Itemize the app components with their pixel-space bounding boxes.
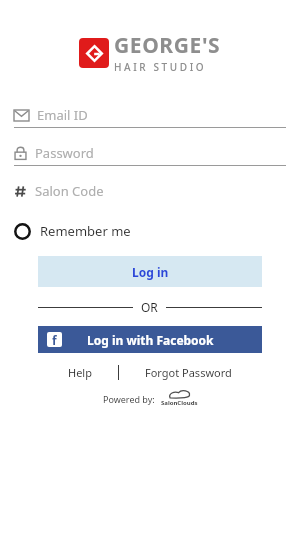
other: Email xyxy=(14,110,29,121)
staticText: Password xyxy=(35,144,94,162)
other: Salon code xyxy=(14,185,27,198)
staticText: Log in xyxy=(132,264,169,280)
button[interactable]: Log in xyxy=(38,256,262,287)
button[interactable]: Remember me xyxy=(12,219,133,243)
staticText: SalonClouds xyxy=(161,399,198,407)
staticText: GEORGE'S xyxy=(114,31,221,60)
button[interactable]: Password xyxy=(14,141,286,165)
other: Facebook xyxy=(47,332,62,347)
staticText: Salon Code xyxy=(35,182,104,200)
staticText: f xyxy=(52,332,57,347)
staticText: Email ID xyxy=(37,106,88,124)
button[interactable]: Help xyxy=(62,362,98,383)
button[interactable]: Forgot Password xyxy=(139,362,238,383)
button[interactable]: Salon code xyxy=(14,179,286,203)
staticText: Forgot Password xyxy=(145,365,232,380)
button[interactable]: Log in with Facebook xyxy=(38,326,262,353)
staticText: Help xyxy=(68,365,92,380)
staticText: Powered by: xyxy=(103,393,155,405)
button[interactable]: Email xyxy=(14,103,286,127)
other: Password xyxy=(14,146,27,160)
staticText: HAIR STUDIO xyxy=(114,60,207,74)
staticText: Log in with Facebook xyxy=(87,332,214,348)
staticText: OR xyxy=(141,299,158,315)
staticText: Remember me xyxy=(40,222,131,240)
